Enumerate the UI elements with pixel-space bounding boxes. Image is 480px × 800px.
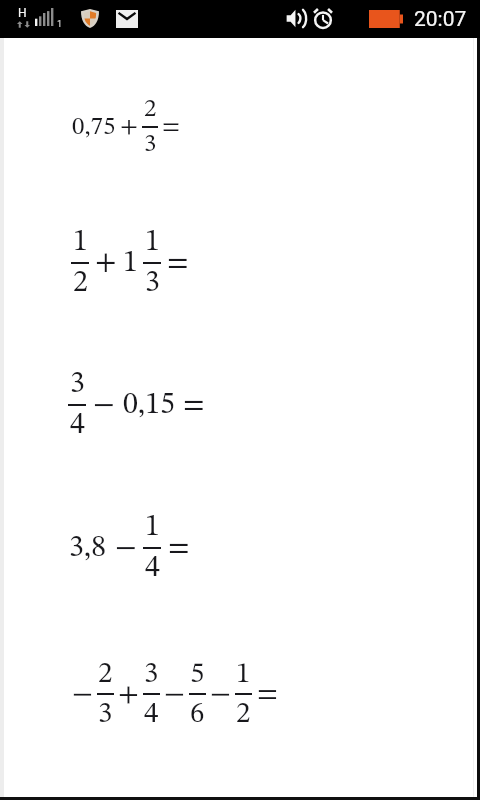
button[interactable]: 3,8 (69, 512, 190, 583)
staticText: 6 (190, 700, 205, 729)
staticText: = (162, 115, 181, 140)
staticText: 1 (73, 227, 88, 257)
staticText: 3 (145, 268, 160, 298)
staticText: = (167, 248, 189, 278)
other: Alarm set (312, 7, 334, 29)
staticText: 1 (145, 512, 160, 542)
staticText: 0,15 (123, 390, 175, 420)
staticText: 0,75 (72, 115, 116, 140)
staticText: 3 (144, 660, 159, 689)
button[interactable]: 1 (71, 227, 189, 298)
staticText: 2 (73, 268, 88, 298)
other: Battery (369, 10, 403, 28)
staticText: = (257, 680, 278, 709)
staticText: 3,8 (69, 533, 107, 563)
button[interactable]: 3 (68, 369, 205, 440)
staticText: H (18, 6, 27, 20)
staticText: − (210, 680, 231, 709)
staticText: − (164, 680, 185, 709)
staticText: 1 (145, 227, 160, 257)
staticText: + (95, 248, 117, 278)
staticText: 20:07 (414, 7, 467, 32)
staticText: − (72, 680, 93, 709)
staticText: + (120, 115, 139, 140)
staticText: 1 (123, 248, 138, 278)
other: Unread mail (116, 10, 138, 28)
button[interactable]: 0,75 (72, 97, 181, 157)
staticText: 2 (236, 700, 251, 729)
staticText: 4 (145, 553, 160, 583)
staticText: − (93, 390, 115, 420)
staticText: 4 (70, 410, 85, 440)
staticText: = (183, 390, 205, 420)
staticText: + (118, 680, 139, 709)
staticText: 5 (190, 660, 205, 689)
button[interactable]: − (72, 660, 278, 729)
staticText: 3 (70, 369, 85, 399)
staticText: 1 (236, 660, 251, 689)
staticText: 2 (98, 660, 113, 689)
other: Sound on (286, 8, 307, 29)
staticText: 4 (144, 700, 159, 729)
staticText: − (115, 533, 137, 563)
staticText: = (168, 533, 190, 563)
staticText: 2 (144, 97, 157, 122)
staticText: 1 (57, 19, 63, 30)
other: Security (81, 9, 99, 28)
staticText: 3 (98, 700, 113, 729)
staticText: 3 (144, 132, 157, 157)
